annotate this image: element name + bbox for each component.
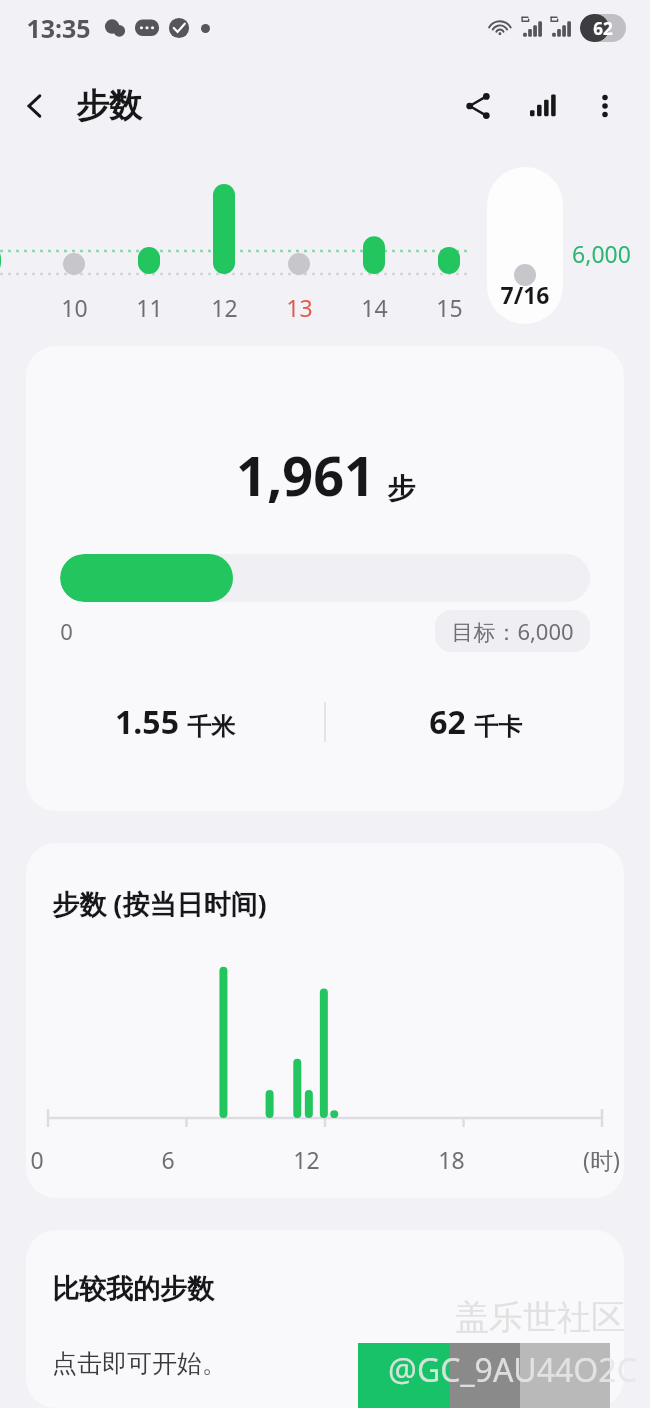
staticText: 1,961 <box>236 438 375 512</box>
staticText: 12 <box>211 292 238 323</box>
button[interactable]: More options <box>574 75 636 137</box>
staticText: 0 <box>60 616 73 646</box>
staticText: 1.55 <box>115 700 179 744</box>
staticText: 62 <box>429 700 466 744</box>
staticText: 步数 (按当日时间) <box>52 885 267 922</box>
button[interactable]: Back <box>0 71 70 141</box>
staticText: 11 <box>136 292 163 323</box>
staticText: 千米 <box>187 712 235 742</box>
staticText: 13 <box>286 292 313 323</box>
button[interactable]: 7/16 <box>487 167 563 324</box>
button[interactable]: 步数 (按当日时间) <box>26 843 624 1198</box>
staticText: 12 <box>293 1144 320 1175</box>
staticText: 比较我的步数 <box>52 1272 214 1306</box>
button[interactable]: Statistics <box>510 74 574 138</box>
button[interactable]: Share <box>446 74 510 138</box>
staticText: 千卡 <box>474 712 522 742</box>
staticText: 13:35 <box>26 11 91 45</box>
staticText: 步 <box>387 471 415 506</box>
staticText: @GC_9AU44O2C <box>388 1348 637 1392</box>
staticText: 15 <box>436 292 463 323</box>
staticText: 点击即可开始。 <box>52 1348 227 1379</box>
staticText: 7/16 <box>500 279 550 310</box>
staticText: 目标：6,000 <box>451 616 574 646</box>
button[interactable]: 比较我的步数 <box>26 1230 624 1408</box>
staticText: 盖乐世社区 <box>455 1296 625 1339</box>
staticText: (时) <box>583 1144 620 1175</box>
staticText: 18 <box>438 1144 465 1175</box>
button[interactable]: 1,961 <box>26 346 624 811</box>
staticText: 6 <box>161 1144 175 1175</box>
staticText: 62 <box>593 17 613 40</box>
staticText: 14 <box>361 292 388 323</box>
staticText: 0 <box>30 1144 44 1175</box>
staticText: 10 <box>61 292 88 323</box>
staticText: 步数 <box>76 85 142 127</box>
staticText: 6,000 <box>572 238 631 269</box>
